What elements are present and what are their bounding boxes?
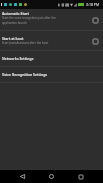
- staticText: Voice Recognition Settings: [2, 72, 47, 77]
- staticText: Start JarvisAssistant after the boot: [2, 41, 49, 45]
- staticText: Networks Settings: [2, 56, 34, 61]
- staticText: Automatic Start: [2, 11, 29, 16]
- button[interactable]: Networks Settings: [0, 51, 103, 66]
- button[interactable]: Back: [16, 170, 29, 183]
- button[interactable]: Start at boot: [0, 31, 103, 50]
- button[interactable]: Home: [45, 170, 58, 183]
- button[interactable]: Voice Recognition Settings: [0, 67, 103, 82]
- staticText: 3:18 PM: [86, 2, 100, 7]
- staticText: Start at boot: [2, 36, 24, 41]
- button[interactable]: Recent apps: [74, 170, 87, 183]
- button[interactable]: Start at boot: [90, 36, 100, 46]
- button[interactable]: Automatic Start: [90, 15, 100, 25]
- staticText: Start the voice recognition just after t…: [2, 16, 56, 24]
- button[interactable]: Automatic Start: [0, 9, 103, 30]
